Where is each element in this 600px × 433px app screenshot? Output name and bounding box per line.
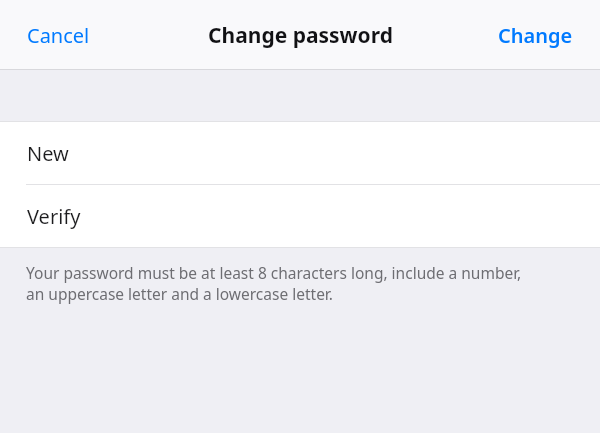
- staticText: New: [27, 140, 69, 167]
- button[interactable]: New: [0, 122, 600, 184]
- button[interactable]: Change: [471, 6, 600, 65]
- staticText: Change password: [208, 21, 393, 50]
- staticText: Verify: [27, 203, 81, 230]
- staticText: Your password must be at least 8 charact…: [26, 262, 530, 305]
- staticText: Cancel: [27, 22, 90, 49]
- button[interactable]: Cancel: [0, 6, 117, 65]
- button[interactable]: Verify: [0, 185, 600, 247]
- staticText: Change: [498, 22, 573, 49]
